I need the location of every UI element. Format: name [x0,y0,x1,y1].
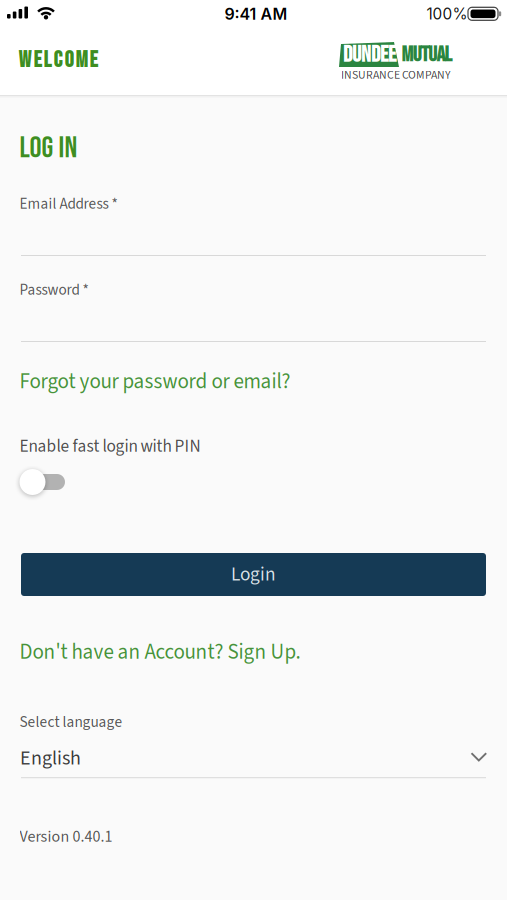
staticText: Enable fast login with PIN [19,434,200,459]
button[interactable]: Email Address [21,194,486,256]
staticText: English [20,744,81,772]
staticText: 9:41 AM [224,4,287,24]
button[interactable]: Enable fast login with PIN [21,469,87,495]
staticText: Login [231,561,276,588]
staticText: Password * [19,279,88,301]
staticText: WELCOME [18,47,97,74]
button[interactable]: Don't have an Account? Sign Up. [19,639,484,665]
staticText: Select language [19,711,122,733]
staticText: Don't have an Account? Sign Up. [19,637,300,667]
button[interactable]: Login [21,553,486,596]
staticText: Forgot your password or email? [19,367,290,397]
staticText: LOG IN [19,130,77,166]
staticText: Email Address * [19,193,117,215]
staticText: 100% [426,5,467,23]
staticText: MUTUAL [402,42,452,68]
staticText: DUNDEE [343,41,396,68]
staticText: Version 0.40.1 [19,825,112,848]
button[interactable]: Forgot your password or email? [19,369,484,395]
button[interactable]: Password [21,280,486,342]
staticText: INSURANCE COMPANY [341,67,451,83]
button[interactable]: Select language: English [21,738,486,778]
